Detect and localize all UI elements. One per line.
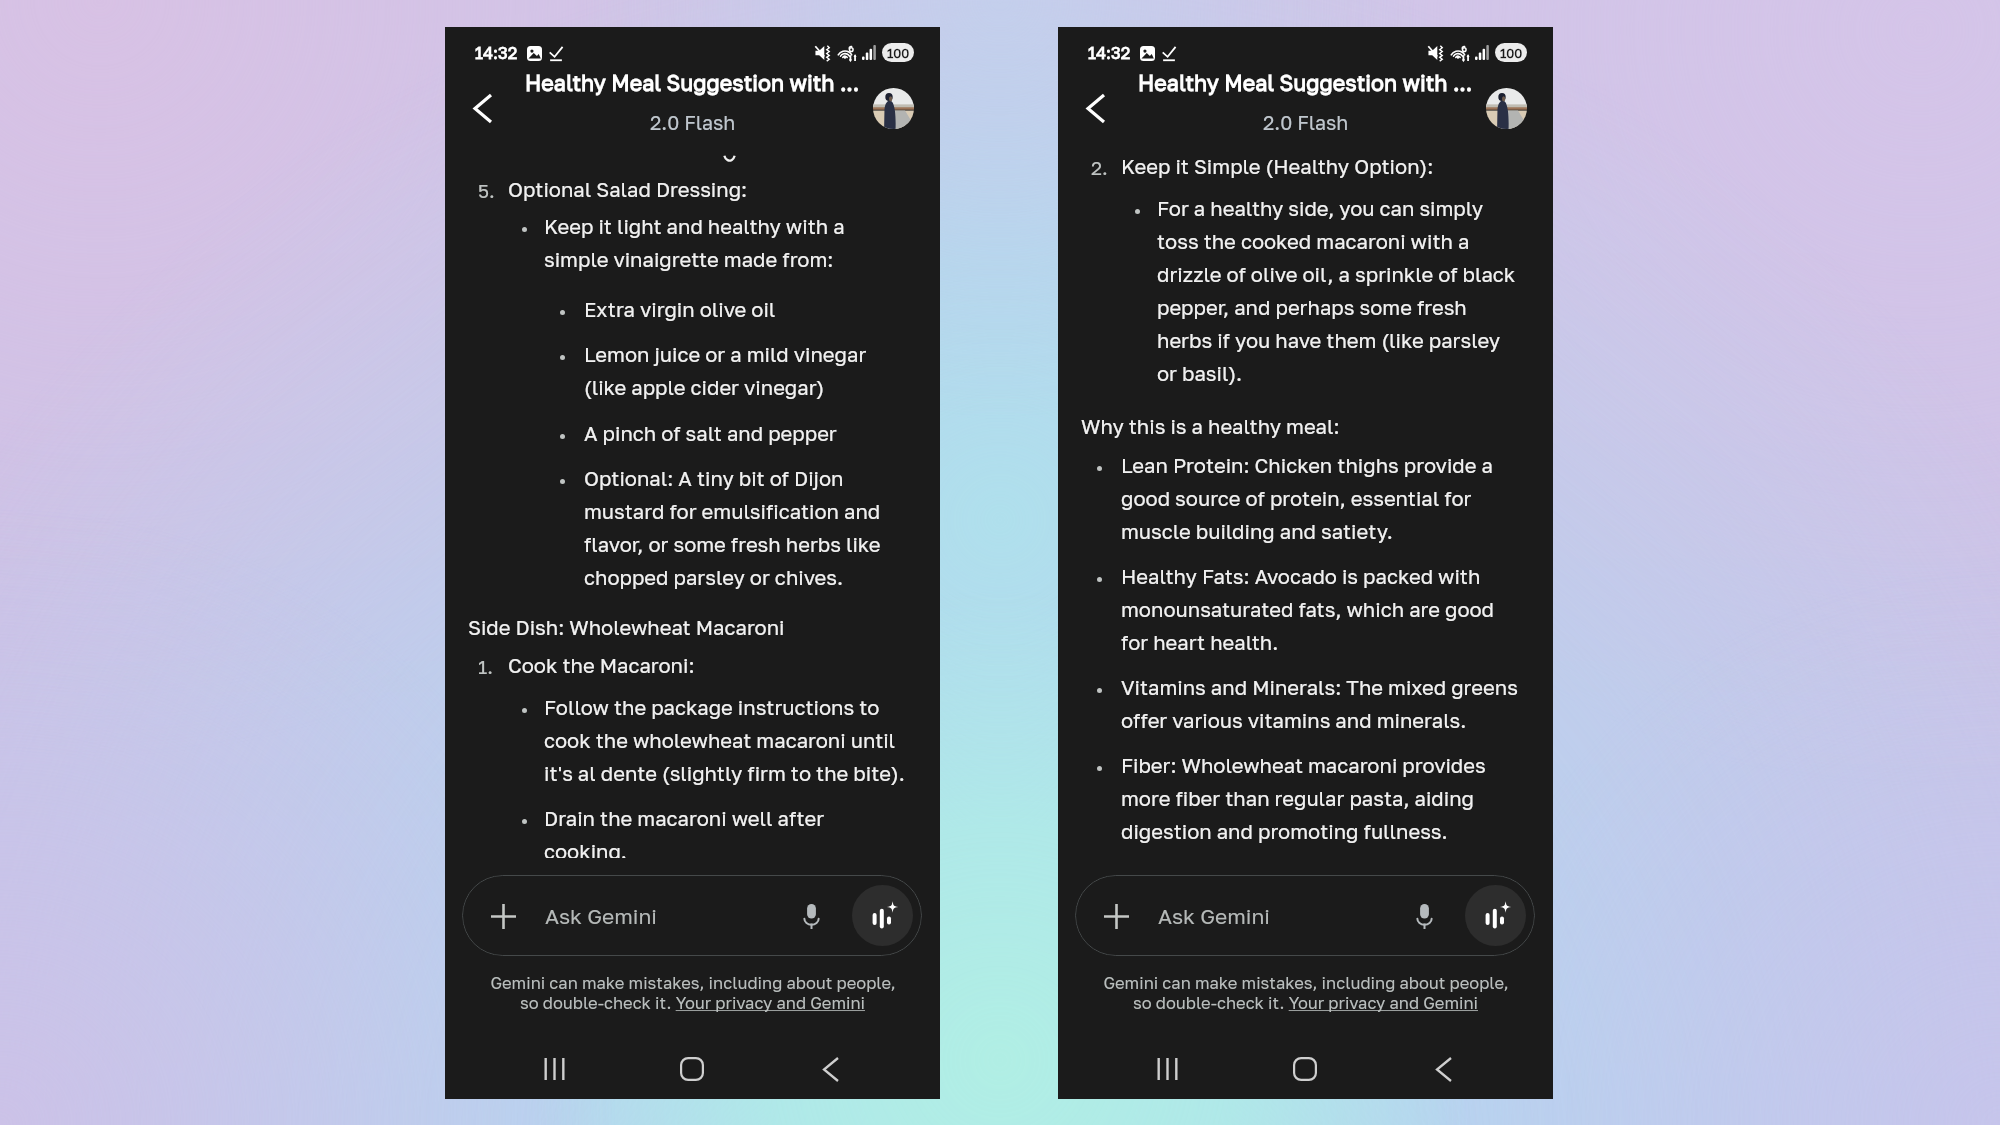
staticText: Keep it Simple (Healthy Option): xyxy=(1121,154,1523,178)
staticText: Healthy Meal Suggestion with ... xyxy=(525,70,860,96)
button[interactable]: Profile xyxy=(1486,88,1527,129)
button[interactable]: Recents xyxy=(524,1040,584,1098)
button[interactable]: Home xyxy=(1275,1040,1335,1098)
staticText: 2. xyxy=(1091,156,1108,179)
button[interactable]: Back xyxy=(801,1040,861,1098)
staticText: For a healthy side, you can simply toss … xyxy=(1157,196,1523,385)
staticText: 2.0 Flash xyxy=(650,111,736,134)
staticText: A pinch of salt and pepper xyxy=(584,421,910,445)
button[interactable]: Home xyxy=(662,1040,722,1098)
staticText: Extra virgin olive oil xyxy=(584,297,910,321)
staticText: Lean Protein: Chicken thighs provide a g… xyxy=(1121,453,1523,543)
staticText: 14:32 xyxy=(1088,43,1131,63)
staticText: Optional: A tiny bit of Dijon mustard fo… xyxy=(584,466,910,589)
staticText: 2.0 Flash xyxy=(1263,111,1349,134)
staticText: Healthy Fats: Avocado is packed with mon… xyxy=(1121,564,1523,654)
button[interactable]: Voice input xyxy=(791,896,831,936)
staticText: Gemini can make mistakes, including abou… xyxy=(490,973,896,993)
staticText: so double-check it. Your privacy and Gem… xyxy=(1133,993,1478,1013)
button[interactable]: Recents xyxy=(1137,1040,1197,1098)
button[interactable]: Profile xyxy=(873,88,914,129)
staticText: Why this is a healthy meal: xyxy=(1081,414,1340,438)
staticText: Follow the package instructions to cook … xyxy=(544,695,910,785)
staticText: Healthy Meal Suggestion with ... xyxy=(1138,70,1473,96)
staticText: Drain the macaroni well after cooking. xyxy=(544,806,910,858)
staticText: Vitamins and Minerals: The mixed greens … xyxy=(1121,675,1523,732)
staticText: 14:32 xyxy=(475,43,518,63)
button[interactable]: Add xyxy=(462,875,922,956)
staticText: Ask Gemini xyxy=(545,903,657,928)
button[interactable]: Add xyxy=(1096,896,1136,936)
staticText: 100 xyxy=(1500,45,1523,61)
staticText: Gemini can make mistakes, including abou… xyxy=(1103,973,1509,993)
button[interactable]: Add xyxy=(1075,875,1535,956)
staticText: Optional Salad Dressing: xyxy=(508,177,910,201)
staticText: so double-check it. Your privacy and Gem… xyxy=(520,993,865,1013)
staticText: Keep it light and healthy with a simple … xyxy=(544,214,910,271)
button[interactable]: Gemini Live xyxy=(852,885,913,946)
staticText: 100 xyxy=(887,45,910,61)
button[interactable]: Add xyxy=(483,896,523,936)
button[interactable]: Gemini Live xyxy=(1465,885,1526,946)
button[interactable]: Back xyxy=(1414,1040,1474,1098)
staticText: Lemon juice or a mild vinegar (like appl… xyxy=(584,342,910,399)
staticText: Ask Gemini xyxy=(1158,903,1270,928)
staticText: Side Dish: Wholewheat Macaroni xyxy=(468,615,785,639)
button[interactable]: Back xyxy=(459,84,507,132)
button[interactable]: Voice input xyxy=(1404,896,1444,936)
button[interactable]: Back xyxy=(1072,84,1120,132)
staticText: 1. xyxy=(478,655,493,678)
staticText: Cook the Macaroni: xyxy=(508,653,910,677)
staticText: Fiber: Wholewheat macaroni provides more… xyxy=(1121,753,1523,843)
staticText: 5. xyxy=(478,179,495,202)
